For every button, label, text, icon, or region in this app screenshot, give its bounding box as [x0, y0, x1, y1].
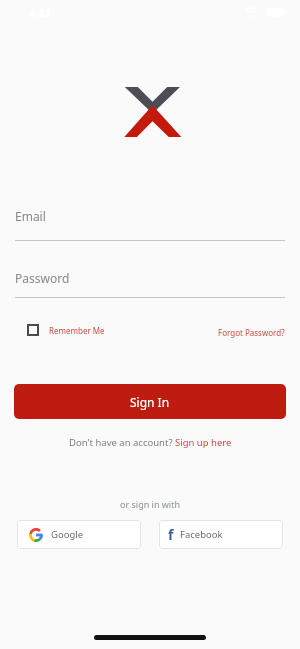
button[interactable]: f [159, 520, 283, 549]
staticText: or sign in with [120, 498, 181, 510]
staticText: Facebook [180, 528, 223, 541]
staticText: Don't have an account? [69, 436, 175, 449]
staticText: Google [51, 528, 84, 541]
button[interactable]: Remember Me [27, 324, 105, 336]
staticText: Password [15, 270, 70, 286]
staticText: Remember Me [49, 325, 105, 336]
button[interactable]: Sign up here [175, 436, 232, 449]
button[interactable]: Sign In [14, 384, 286, 419]
button[interactable]: Forgot Password? [218, 327, 285, 338]
button[interactable]: Google [17, 520, 141, 549]
staticText: Email [15, 208, 46, 224]
staticText: f [168, 525, 174, 544]
staticText: Sign In [130, 394, 170, 410]
